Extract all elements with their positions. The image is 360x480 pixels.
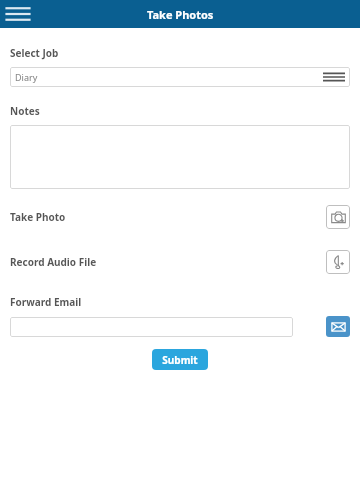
staticText: Record Audio File: [10, 255, 326, 269]
button[interactable]: Menu: [0, 0, 36, 28]
button[interactable]: Submit: [152, 349, 208, 370]
button[interactable]: [10, 317, 293, 337]
button[interactable]: Forward Email: [326, 316, 350, 337]
button[interactable]: Take Photo: [326, 205, 350, 229]
staticText: Forward Email: [10, 295, 82, 309]
staticText: Notes: [10, 104, 40, 118]
staticText: Take Photos: [147, 7, 214, 22]
staticText: Submit: [162, 353, 198, 367]
button[interactable]: Record Audio File: [326, 250, 350, 274]
staticText: Select Job: [10, 46, 59, 60]
button[interactable]: Diary: [10, 67, 350, 87]
staticText: Take Photo: [10, 210, 326, 224]
staticText: Diary: [15, 71, 323, 83]
button[interactable]: [10, 125, 350, 189]
